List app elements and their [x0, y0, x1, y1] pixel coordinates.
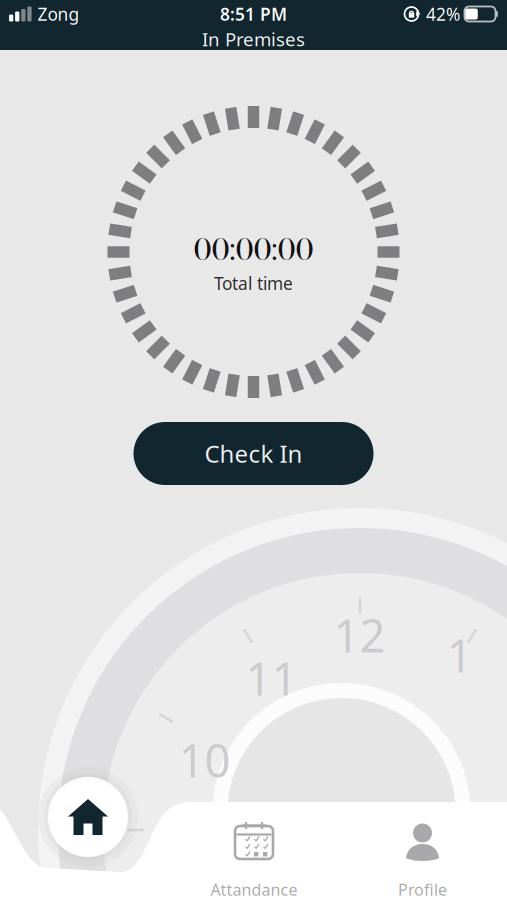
- staticText: Check In: [204, 438, 302, 469]
- button[interactable]: Home: [38, 767, 138, 867]
- button[interactable]: Check In: [133, 422, 373, 485]
- staticText: Profile: [398, 879, 447, 900]
- staticText: 10: [178, 730, 230, 790]
- staticText: Total time: [214, 272, 293, 295]
- staticText: 11: [245, 648, 297, 708]
- staticText: Attandance: [210, 879, 297, 900]
- staticText: 8:51 PM: [220, 2, 287, 25]
- staticText: 42%: [426, 2, 460, 25]
- button[interactable]: Attandance: [170, 802, 338, 900]
- staticText: In Premises: [202, 27, 305, 51]
- staticText: 00:00:00: [193, 227, 313, 272]
- staticText: Zong: [38, 2, 80, 25]
- staticText: 1: [446, 625, 472, 685]
- staticText: 12: [333, 605, 385, 665]
- button[interactable]: Profile: [338, 802, 507, 900]
